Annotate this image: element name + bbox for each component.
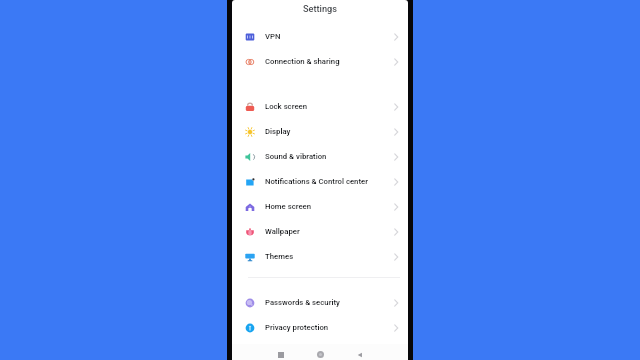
staticText: Privacy protection bbox=[265, 323, 329, 332]
button[interactable]: Passwords & security bbox=[232, 290, 408, 315]
button[interactable]: Display bbox=[232, 119, 408, 144]
button[interactable]: Lock screen bbox=[232, 94, 408, 119]
button[interactable]: Privacy protection bbox=[232, 315, 408, 340]
staticText: Themes bbox=[265, 252, 294, 261]
button[interactable]: Recent apps bbox=[275, 349, 286, 360]
button[interactable]: Wallpaper bbox=[232, 219, 408, 244]
button[interactable]: Notifications & Control center bbox=[232, 169, 408, 194]
staticText: Sound & vibration bbox=[265, 152, 327, 161]
staticText: Settings bbox=[303, 3, 337, 14]
staticText: Passwords & security bbox=[265, 298, 340, 307]
staticText: Home screen bbox=[265, 202, 312, 211]
staticText: Lock screen bbox=[265, 102, 308, 111]
button[interactable]: Home screen bbox=[232, 194, 408, 219]
button[interactable]: Connection & sharing bbox=[232, 49, 408, 74]
staticText: Wallpaper bbox=[265, 227, 300, 236]
button[interactable]: VPN bbox=[232, 24, 408, 49]
button[interactable]: Home bbox=[315, 349, 326, 360]
staticText: Connection & sharing bbox=[265, 57, 340, 66]
staticText: VPN bbox=[265, 32, 281, 41]
button[interactable]: Sound & vibration bbox=[232, 144, 408, 169]
staticText: Notifications & Control center bbox=[265, 177, 369, 186]
button[interactable]: Themes bbox=[232, 244, 408, 269]
staticText: Display bbox=[265, 127, 291, 136]
button[interactable]: Back bbox=[354, 349, 365, 360]
